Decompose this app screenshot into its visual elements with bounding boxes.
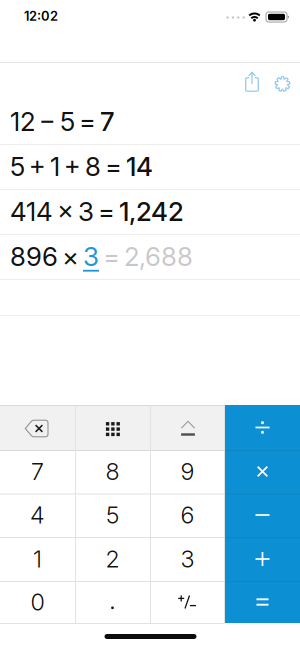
button[interactable] [75, 405, 150, 450]
staticText: 7 [100, 106, 114, 137]
button[interactable] [150, 405, 225, 450]
button[interactable] [225, 450, 300, 493]
staticText: = 2,688 [99, 241, 193, 272]
button[interactable]: 1 [0, 537, 74, 580]
staticText: 2 [105, 545, 119, 573]
staticText: 7 [31, 457, 44, 486]
staticText: 4 [30, 501, 45, 529]
staticText: 0 [30, 588, 44, 616]
button[interactable]: 6 [150, 493, 224, 536]
staticText: 896 × [10, 241, 83, 272]
button[interactable] [150, 581, 225, 623]
button[interactable] [225, 537, 300, 581]
button[interactable]: 3 [150, 537, 224, 580]
button[interactable] [75, 581, 150, 623]
button[interactable] [225, 581, 300, 623]
staticText: 6 [180, 501, 194, 529]
button[interactable]: 0 [0, 580, 74, 623]
button[interactable]: 2 [75, 537, 149, 580]
button[interactable] [0, 405, 75, 450]
button[interactable] [225, 405, 300, 450]
staticText: 9 [180, 457, 194, 486]
staticText: 8 [105, 457, 119, 486]
button[interactable]: 7 [0, 450, 74, 493]
button[interactable] [237, 67, 267, 97]
button[interactable]: 9 [150, 450, 224, 493]
button[interactable] [267, 69, 297, 99]
staticText: 3 [83, 241, 99, 272]
staticText: 1,242 [119, 196, 184, 227]
staticText: 14 [126, 151, 153, 182]
button[interactable]: 4 [0, 493, 74, 536]
staticText: 12:02 [24, 8, 58, 24]
staticText: 5 [106, 501, 119, 529]
staticText: 3 [180, 545, 194, 573]
staticText: 414 × 3 = [10, 196, 119, 227]
button[interactable]: 5 [75, 493, 149, 536]
staticText: 5 + 1 + 8 = [10, 151, 126, 182]
staticText: 1 [33, 545, 42, 573]
button[interactable]: 8 [75, 450, 149, 493]
staticText: 12 − 5 = [10, 106, 100, 137]
button[interactable] [225, 493, 300, 537]
